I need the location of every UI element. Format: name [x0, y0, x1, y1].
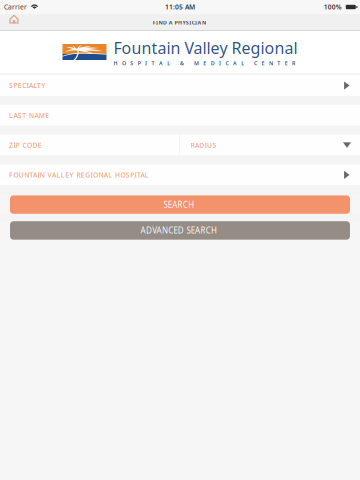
staticText: T	[277, 60, 280, 67]
button[interactable]: SPECIALTY	[0, 75, 360, 96]
staticText: LAST NAME	[9, 111, 52, 120]
staticText: ZIP CODE	[9, 141, 44, 150]
staticText: L	[167, 60, 170, 67]
staticText: R	[292, 60, 295, 67]
button[interactable]: LAST NAME	[0, 105, 360, 126]
staticText: E	[203, 60, 206, 67]
staticText: RADIUS	[190, 141, 219, 150]
staticText: 11:05 AM	[165, 3, 195, 11]
staticText: C	[254, 60, 257, 67]
button[interactable]: RADIUS	[180, 135, 360, 156]
button[interactable]: ADVANCED SEARCH	[10, 221, 350, 240]
staticText: I	[219, 60, 221, 67]
staticText: O	[122, 60, 126, 67]
staticText: &	[180, 60, 184, 67]
button[interactable]: FOUNTAIN VALLEY REGIONAL HOSPITAL	[0, 164, 360, 185]
staticText: A	[233, 60, 237, 67]
staticText: Carrier	[4, 3, 27, 11]
staticText: 100%	[324, 3, 342, 11]
staticText: L	[241, 60, 244, 67]
staticText: SEARCH	[163, 199, 196, 210]
staticText: C	[225, 60, 228, 67]
staticText: Fountain Valley Regional	[113, 37, 297, 58]
staticText: H	[113, 60, 117, 67]
staticText: E	[285, 60, 288, 67]
button[interactable]: Home	[0, 14, 28, 31]
staticText: M	[194, 60, 199, 67]
staticText: A	[159, 60, 163, 67]
staticText: I	[145, 60, 147, 67]
staticText: SPECIALTY	[9, 81, 48, 90]
staticText: D	[211, 60, 215, 67]
staticText: N	[269, 60, 273, 67]
staticText: FIND A PHYSICIAN	[153, 19, 207, 26]
staticText: T	[151, 60, 154, 67]
button[interactable]: ZIP CODE	[0, 135, 180, 156]
staticText: FOUNTAIN VALLEY REGIONAL HOSPITAL	[9, 170, 151, 179]
staticText: ADVANCED SEARCH	[141, 225, 219, 236]
staticText: E	[261, 60, 264, 67]
button[interactable]: SEARCH	[10, 195, 350, 214]
staticText: P	[138, 60, 141, 67]
staticText: S	[130, 60, 133, 67]
